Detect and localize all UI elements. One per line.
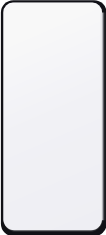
button[interactable]: Phone with tempered glass screen protect… xyxy=(0,0,106,235)
